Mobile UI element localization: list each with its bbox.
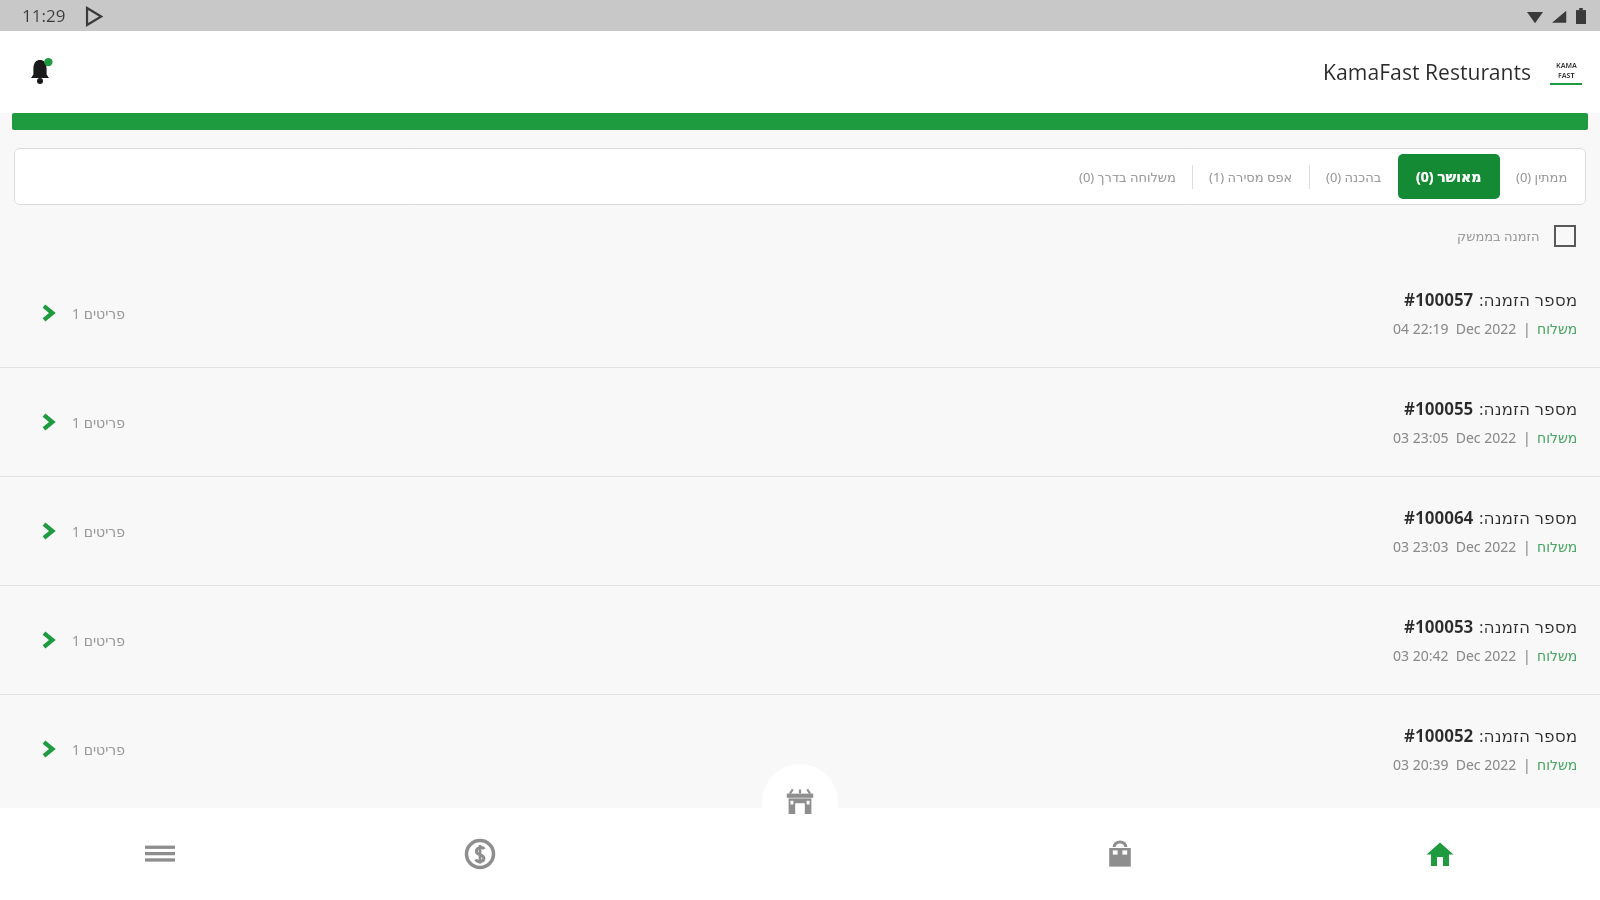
staticText: FAST: [1558, 71, 1575, 81]
button[interactable]: Orders: [960, 808, 1280, 900]
staticText: |: [1523, 646, 1531, 665]
staticText: ממתין (0): [1516, 168, 1568, 186]
staticText: 04 22:19 Dec 2022: [1393, 319, 1517, 338]
staticText: 03 20:39 Dec 2022: [1393, 755, 1517, 774]
button[interactable]: Menu: [0, 808, 320, 900]
staticText: #100057: [1404, 288, 1474, 311]
staticText: KAMA: [1556, 61, 1577, 71]
button[interactable]: 1 פריטים: [0, 586, 1600, 694]
button[interactable]: מאושר (0): [1398, 154, 1500, 199]
staticText: 11:29: [22, 4, 66, 27]
button[interactable]: 1 פריטים: [0, 259, 1600, 367]
button[interactable]: 1 פריטים: [0, 477, 1600, 585]
button[interactable]: Notifications: [16, 48, 64, 96]
button[interactable]: ממתין (0): [1504, 158, 1580, 196]
button[interactable]: 1 פריטים: [0, 695, 1600, 803]
staticText: 1 פריטים: [72, 304, 125, 323]
button[interactable]: אפס מסירה (1): [1197, 158, 1305, 196]
staticText: #100052: [1404, 724, 1474, 747]
staticText: 03 23:03 Dec 2022: [1393, 537, 1517, 556]
staticText: משלוחה בדרך (0): [1079, 168, 1176, 186]
staticText: |: [1523, 319, 1531, 338]
staticText: :מספר הזמנה: [1479, 506, 1578, 529]
button[interactable]: בהכנה (0): [1314, 158, 1394, 196]
staticText: :מספר הזמנה: [1479, 724, 1578, 747]
staticText: |: [1523, 537, 1531, 556]
staticText: #100055: [1404, 397, 1474, 420]
staticText: הזמנה בממשק: [1457, 227, 1540, 245]
staticText: 1 פריטים: [72, 522, 125, 541]
staticText: KamaFast Resturants: [1323, 58, 1532, 87]
button[interactable]: Home: [1280, 808, 1600, 900]
staticText: |: [1523, 428, 1531, 447]
staticText: #100053: [1404, 615, 1474, 638]
staticText: 1 פריטים: [72, 413, 125, 432]
staticText: משלוח: [1537, 648, 1578, 664]
staticText: בהכנה (0): [1326, 168, 1382, 186]
staticText: 03 23:05 Dec 2022: [1393, 428, 1517, 447]
staticText: :מספר הזמנה: [1479, 288, 1578, 311]
button[interactable]: משלוחה בדרך (0): [1067, 158, 1188, 196]
staticText: #100064: [1404, 506, 1474, 529]
staticText: :מספר הזמנה: [1479, 397, 1578, 420]
staticText: משלוח: [1537, 430, 1578, 446]
staticText: אפס מסירה (1): [1209, 168, 1293, 186]
staticText: |: [1523, 755, 1531, 774]
staticText: :מספר הזמנה: [1479, 615, 1578, 638]
staticText: 1 פריטים: [72, 740, 125, 759]
button[interactable]: הזמנה בממשק: [1451, 219, 1582, 253]
button[interactable]: Payments: [320, 808, 640, 900]
button[interactable]: 1 פריטים: [0, 368, 1600, 476]
button[interactable]: Store: [762, 764, 838, 840]
staticText: 1 פריטים: [72, 631, 125, 650]
staticText: 03 20:42 Dec 2022: [1393, 646, 1517, 665]
staticText: משלוח: [1537, 757, 1578, 773]
staticText: מאושר (0): [1416, 167, 1482, 186]
staticText: משלוח: [1537, 539, 1578, 555]
staticText: משלוח: [1537, 321, 1578, 337]
